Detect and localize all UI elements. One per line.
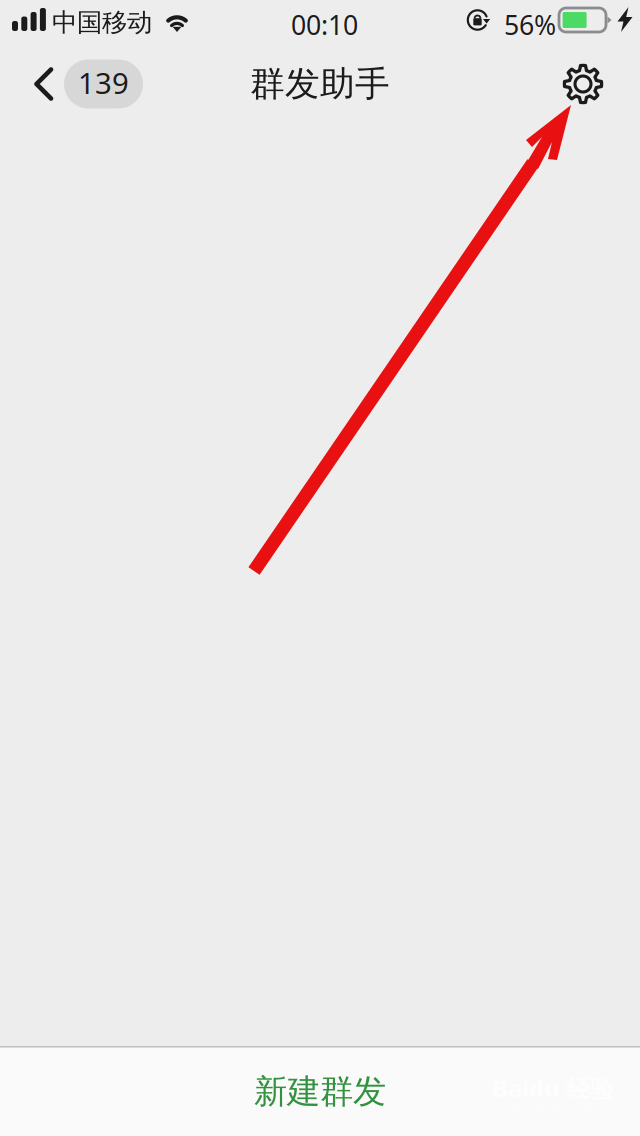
staticText: 新建群发 — [254, 1071, 386, 1112]
staticText: 中国移动 — [52, 7, 152, 38]
button[interactable]: 新建群发 — [0, 1047, 640, 1136]
staticText: 139 — [78, 63, 129, 102]
button[interactable]: 139 — [0, 40, 157, 128]
staticText: 00:10 — [291, 7, 358, 42]
staticText: 群发助手 — [250, 63, 390, 105]
button[interactable]: Settings — [540, 40, 640, 128]
staticText: 56% — [504, 7, 556, 42]
